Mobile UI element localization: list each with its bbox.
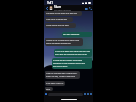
button[interactable]: The best of the guys are like you [45,11,82,16]
button[interactable]: Call [88,6,92,11]
button[interactable]: Attach [45,93,47,95]
button[interactable]: They sent a tiered gift [45,17,73,22]
staticText: What about the far girls [46,24,69,27]
staticText: I know a lot of little guys who have [46,39,80,42]
staticText: Mum [54,5,62,9]
button[interactable]: Video call [84,6,88,11]
staticText: It he with a guy in CHL [46,82,64,85]
staticText: really beautiful girlfriends [46,42,71,45]
staticText: because of not enough sport and [53,62,85,65]
staticText: If you are little you came blamer like [55,50,90,53]
staticText: They sent a tiered gift [46,18,67,21]
staticText: too much food [53,65,68,68]
staticText: mean so big, I have a big back [46,75,75,78]
staticText: The best of the guys are like you [46,12,78,15]
button[interactable]: Back [45,6,49,11]
staticText: 9:41 [47,1,53,5]
button[interactable]: What about the far girls [45,23,76,28]
button[interactable]: DM? [45,87,53,91]
button[interactable]: Then to change with a little boy I [45,71,80,79]
button[interactable]: If your fat it's totally your fault [52,58,92,69]
staticText: If your fat it's totally your fault [53,59,83,62]
staticText: Then to change with a little boy I [46,72,78,75]
button[interactable]: It's very different [62,32,92,37]
staticText: last seen recently [54,9,72,11]
button[interactable]: It he with a guy in CHL [45,81,65,86]
staticText: It's very different [63,33,80,36]
staticText: that and it's nothing of your fault [55,53,87,56]
button[interactable]: I know a lot of little guys who have [45,38,83,46]
staticText: DM? [46,88,51,90]
button[interactable]: If you are little you came blamer like [54,49,92,57]
button[interactable] [49,6,53,10]
